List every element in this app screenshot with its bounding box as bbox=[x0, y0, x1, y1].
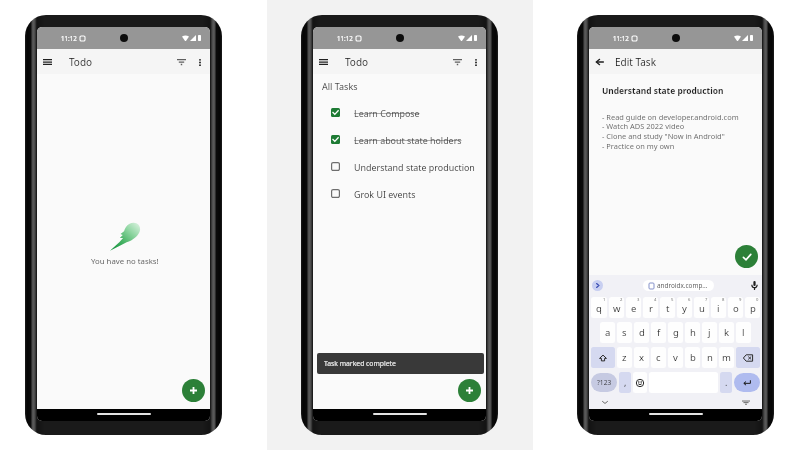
button[interactable]: m bbox=[719, 347, 734, 368]
button[interactable]: g bbox=[668, 322, 683, 343]
staticText: 9 bbox=[739, 297, 742, 303]
button[interactable]: Understand state production bbox=[313, 153, 486, 180]
button[interactable]: d bbox=[634, 322, 649, 343]
button[interactable]: l bbox=[736, 322, 751, 343]
button[interactable]: b bbox=[685, 347, 700, 368]
button[interactable]: u bbox=[694, 297, 709, 318]
button[interactable]: More options bbox=[192, 54, 208, 70]
staticText: Todo bbox=[69, 55, 93, 69]
button[interactable]: More options bbox=[468, 54, 484, 70]
staticText: All Tasks bbox=[322, 80, 358, 92]
button[interactable]: c bbox=[651, 347, 666, 368]
button[interactable]: Emoji bbox=[633, 372, 647, 393]
staticText: j bbox=[708, 326, 711, 339]
button[interactable]: Voice input bbox=[749, 280, 760, 291]
staticText: 4 bbox=[654, 297, 657, 303]
staticText: 0 bbox=[756, 297, 759, 303]
staticText: n bbox=[707, 351, 713, 364]
button[interactable]: z bbox=[617, 347, 632, 368]
staticText: Edit Task bbox=[615, 55, 656, 69]
staticText: p bbox=[750, 302, 756, 315]
staticText: Learn about state holders bbox=[354, 134, 462, 146]
staticText: - Read guide on developer.android.com - … bbox=[602, 112, 739, 152]
button[interactable]: . bbox=[720, 372, 732, 393]
button[interactable]: androidx.comp... bbox=[643, 280, 714, 291]
button[interactable]: j bbox=[702, 322, 717, 343]
button[interactable]: Save task bbox=[735, 245, 758, 268]
staticText: Grok UI events bbox=[354, 188, 416, 200]
staticText: t bbox=[666, 302, 670, 315]
staticText: 6 bbox=[688, 297, 691, 303]
staticText: 3 bbox=[637, 297, 640, 303]
staticText: , bbox=[624, 376, 627, 388]
staticText: e bbox=[631, 302, 637, 315]
button[interactable]: o bbox=[728, 297, 743, 318]
button[interactable]: Learn Compose bbox=[313, 99, 486, 126]
button[interactable]: Expand bbox=[592, 280, 603, 291]
staticText: . bbox=[725, 376, 728, 388]
staticText: 11:12 bbox=[613, 34, 629, 42]
button[interactable]: y bbox=[677, 297, 692, 318]
button[interactable]: v bbox=[668, 347, 683, 368]
staticText: f bbox=[657, 326, 661, 339]
staticText: a bbox=[605, 326, 611, 339]
button[interactable]: Filter bbox=[173, 54, 189, 70]
staticText: androidx.comp... bbox=[657, 281, 708, 290]
staticText: g bbox=[673, 326, 679, 339]
staticText: 7 bbox=[705, 297, 708, 303]
button[interactable]: Add task bbox=[182, 379, 205, 402]
staticText: 11:12 bbox=[61, 34, 77, 42]
staticText: You have no tasks! bbox=[91, 256, 159, 267]
button[interactable]: Hide keyboard bbox=[601, 398, 609, 406]
staticText: l bbox=[742, 326, 745, 339]
button[interactable]: Filter bbox=[449, 54, 465, 70]
button[interactable]: k bbox=[719, 322, 734, 343]
button[interactable]: Backspace bbox=[736, 347, 760, 368]
staticText: v bbox=[673, 351, 678, 364]
staticText: i bbox=[717, 302, 720, 315]
button[interactable]: Shift bbox=[591, 347, 615, 368]
button[interactable]: Add task bbox=[458, 379, 481, 402]
button[interactable]: i bbox=[711, 297, 726, 318]
button[interactable]: a bbox=[600, 322, 615, 343]
button[interactable]: Learn about state holders bbox=[313, 126, 486, 153]
button[interactable]: ?123 bbox=[591, 373, 617, 392]
staticText: u bbox=[699, 302, 705, 315]
staticText: Understand state production bbox=[354, 161, 475, 173]
staticText: r bbox=[649, 302, 653, 315]
staticText: z bbox=[622, 351, 627, 364]
button[interactable]: , bbox=[619, 372, 631, 393]
button[interactable]: n bbox=[702, 347, 717, 368]
button[interactable]: q bbox=[591, 297, 607, 318]
staticText: w bbox=[613, 302, 621, 315]
button[interactable]: x bbox=[634, 347, 649, 368]
staticText: h bbox=[690, 326, 696, 339]
staticText: o bbox=[733, 302, 739, 315]
button[interactable]: h bbox=[685, 322, 700, 343]
button[interactable]: s bbox=[617, 322, 632, 343]
button[interactable]: f bbox=[651, 322, 666, 343]
staticText: d bbox=[639, 326, 645, 339]
staticText: Learn Compose bbox=[354, 107, 420, 119]
staticText: k bbox=[724, 326, 730, 339]
button[interactable]: Grok UI events bbox=[313, 180, 486, 207]
button[interactable]: p bbox=[745, 297, 760, 318]
button[interactable]: Enter bbox=[734, 373, 760, 392]
staticText: Todo bbox=[345, 55, 369, 69]
staticText: x bbox=[639, 351, 645, 364]
staticText: 8 bbox=[722, 297, 725, 303]
button[interactable]: r bbox=[643, 297, 658, 318]
button[interactable]: w bbox=[609, 297, 624, 318]
button[interactable]: Menu bbox=[39, 54, 55, 70]
button[interactable]: Keyboard settings bbox=[742, 398, 750, 406]
staticText: q bbox=[596, 302, 602, 315]
button[interactable]: Menu bbox=[315, 54, 331, 70]
staticText: s bbox=[622, 326, 627, 339]
button[interactable]: e bbox=[626, 297, 641, 318]
staticText: c bbox=[656, 351, 661, 364]
button[interactable]: t bbox=[660, 297, 675, 318]
button[interactable]: Back bbox=[592, 54, 608, 70]
staticText: 5 bbox=[671, 297, 674, 303]
staticText: ?123 bbox=[597, 378, 612, 387]
